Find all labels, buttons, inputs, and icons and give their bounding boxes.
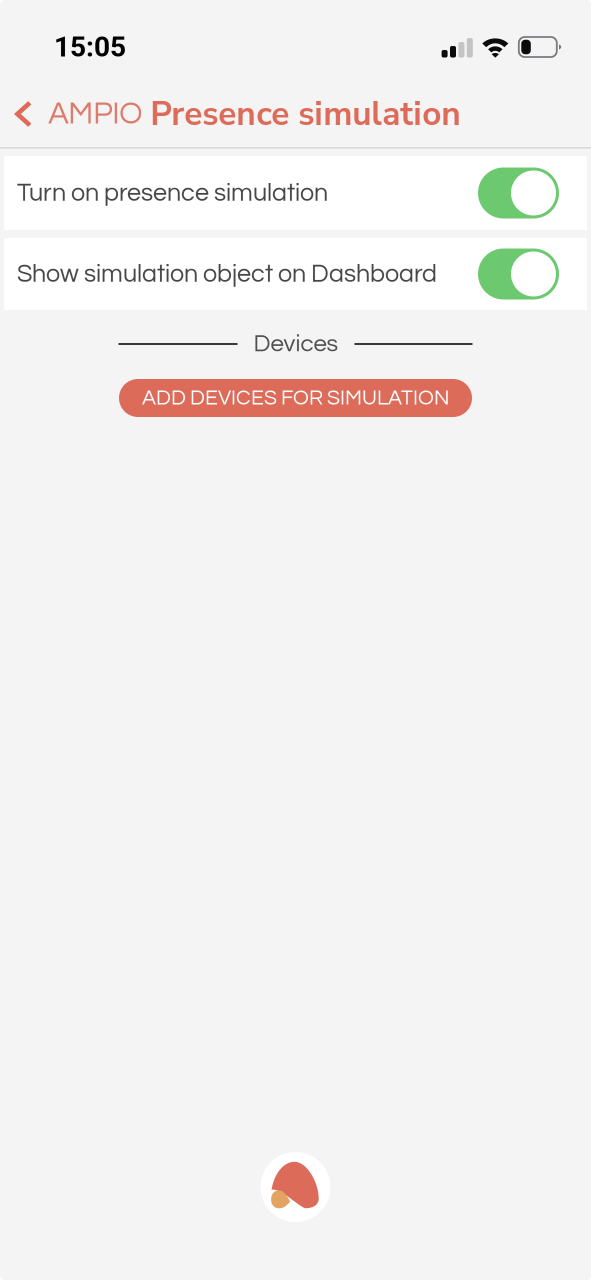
- button[interactable]: Show simulation object on Dashboard: [4, 238, 587, 310]
- staticText: ADD DEVICES FOR SIMULATION: [142, 387, 449, 409]
- staticText: Devices: [253, 332, 338, 356]
- button[interactable]: ADD DEVICES FOR SIMULATION: [119, 379, 472, 417]
- staticText: AMPIO: [48, 98, 142, 130]
- button[interactable]: AMPIO: [0, 86, 150, 142]
- staticText: Turn on presence simulation: [17, 180, 328, 206]
- staticText: 15:05: [54, 31, 126, 63]
- staticText: Presence simulation: [150, 91, 461, 137]
- button[interactable]: Turn on presence simulation: [4, 156, 587, 230]
- staticText: Show simulation object on Dashboard: [17, 261, 437, 287]
